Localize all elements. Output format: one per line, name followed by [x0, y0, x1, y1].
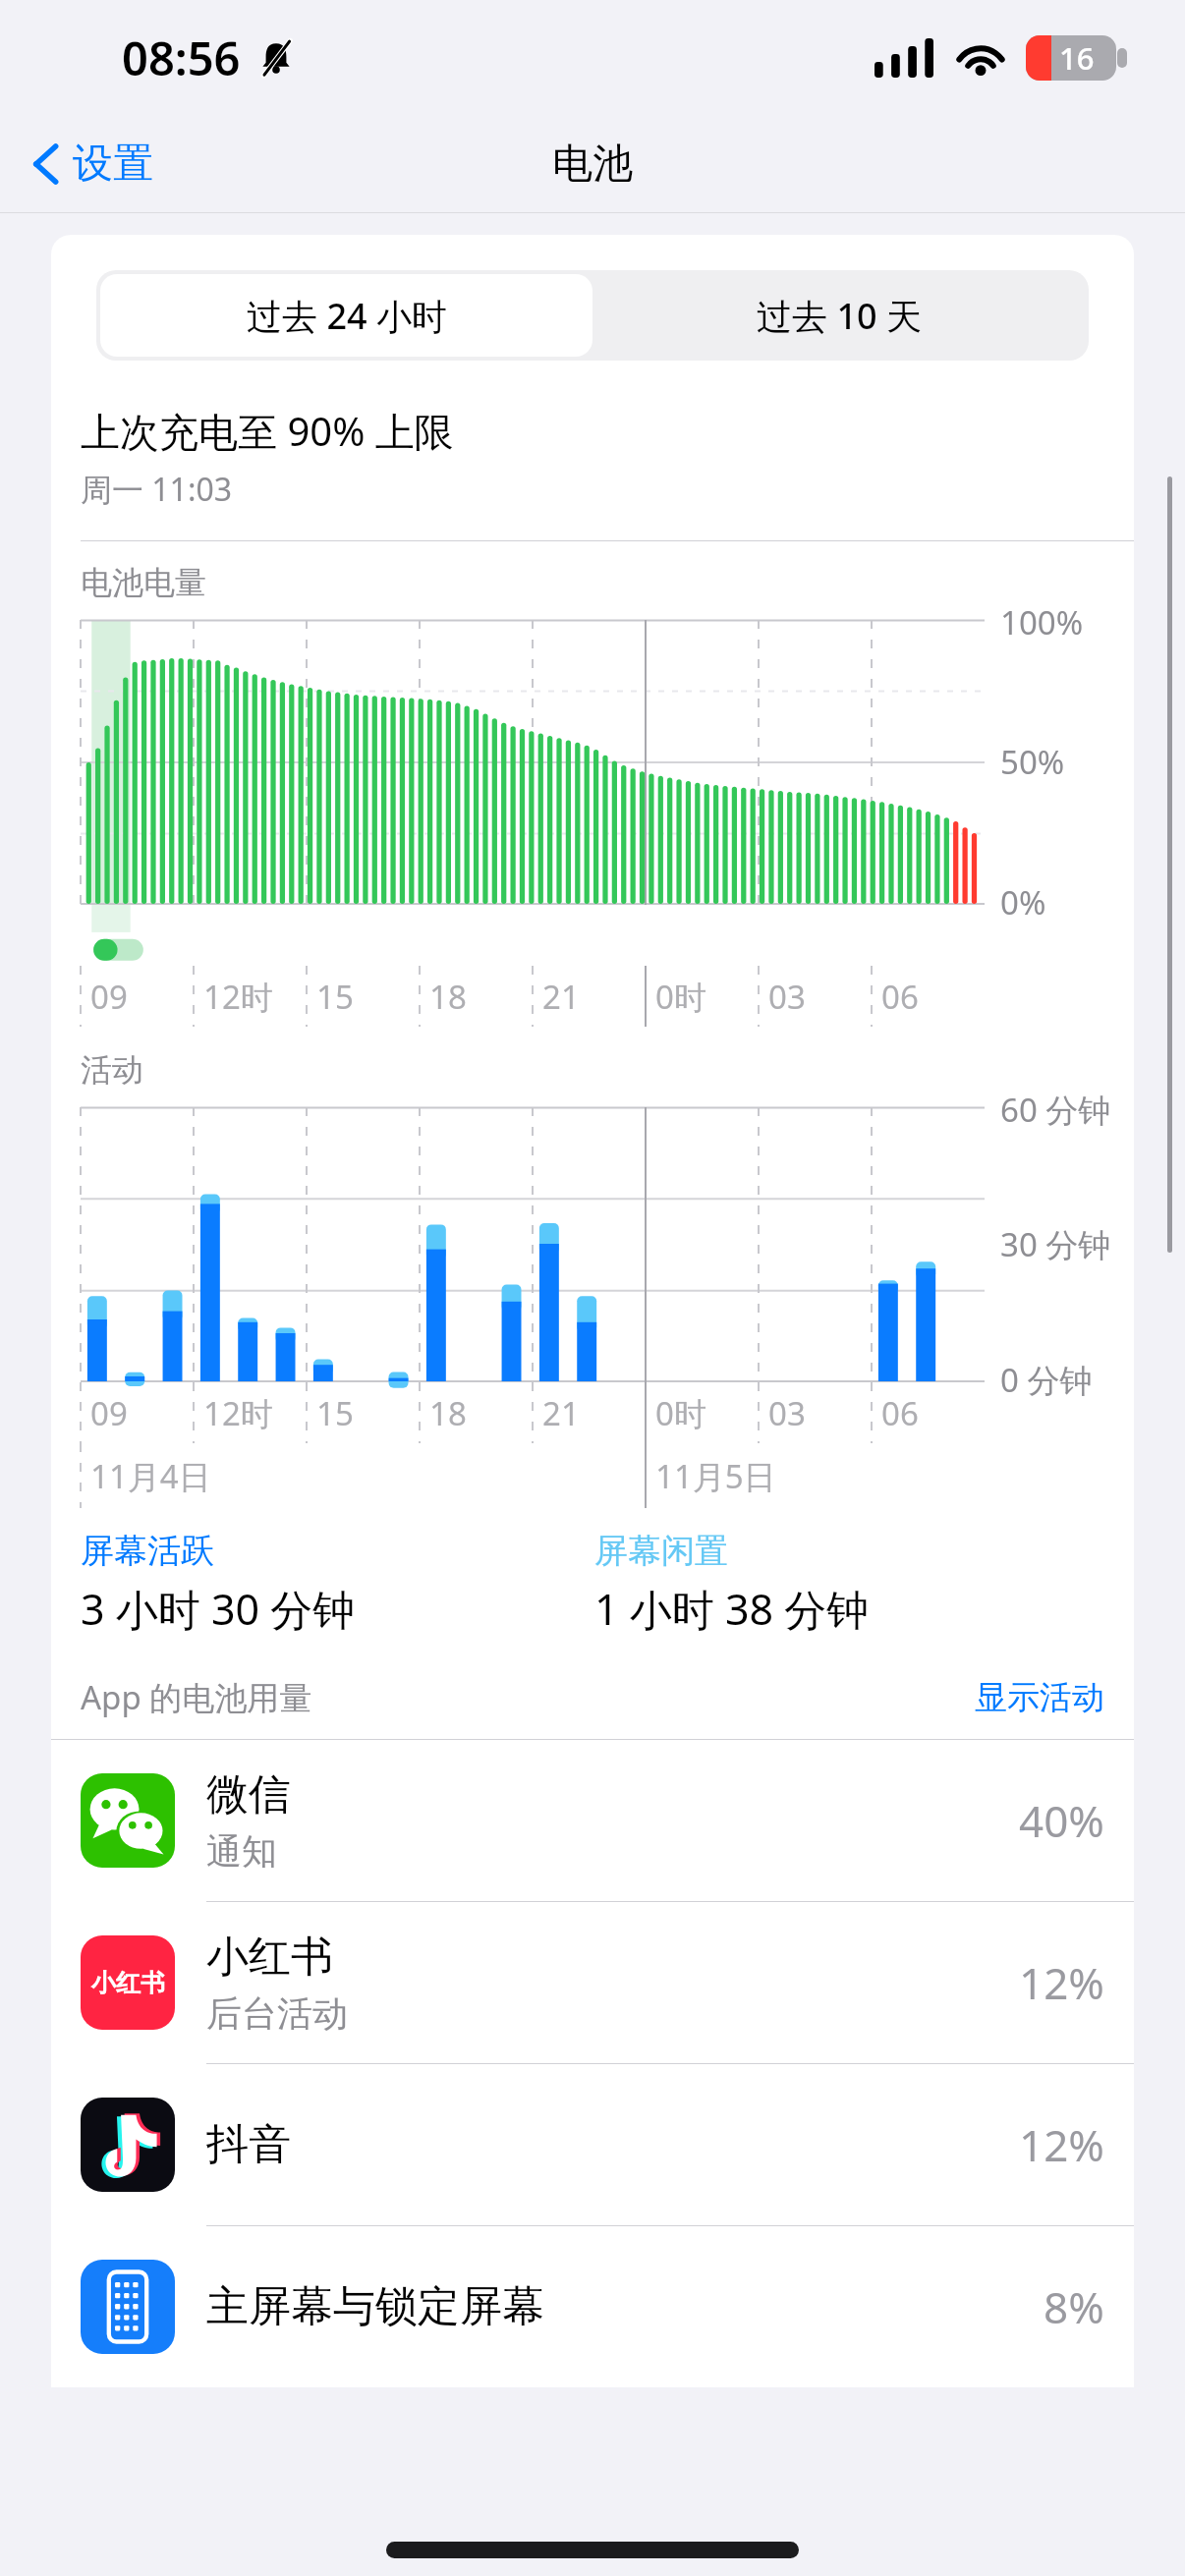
staticText: 11月5日 — [655, 1454, 776, 1498]
staticText: 8% — [1044, 2277, 1104, 2336]
staticText: 03 — [768, 975, 806, 1019]
button[interactable]: 过去 24 小时 — [100, 274, 592, 357]
staticText: 09 — [90, 975, 128, 1019]
staticText: 30 分钟 — [1000, 1222, 1111, 1266]
staticText: 小红书 — [206, 1931, 333, 1984]
staticText: 11月4日 — [90, 1454, 211, 1498]
staticText: 50% — [1000, 740, 1065, 784]
staticText: 21 — [542, 975, 580, 1019]
staticText: 上次充电至 90% 上限 — [81, 404, 454, 458]
staticText: 通知 — [206, 1829, 277, 1874]
button[interactable]: 抖音 — [51, 2064, 1134, 2226]
staticText: App 的电池用量 — [81, 1675, 312, 1719]
button[interactable]: 过去 10 天 — [592, 274, 1085, 357]
staticText: 微信 — [206, 1768, 291, 1821]
staticText: 1 小时 38 分钟 — [594, 1580, 870, 1638]
button[interactable]: 设置 — [24, 131, 161, 197]
staticText: 电池电量 — [81, 563, 206, 602]
button[interactable]: 屏幕活跃 — [81, 1530, 214, 1572]
staticText: 16 — [1059, 37, 1095, 79]
staticText: 60 分钟 — [1000, 1088, 1111, 1132]
staticText: 06 — [881, 1391, 919, 1435]
staticText: 15 — [316, 1391, 354, 1435]
staticText: 设置 — [73, 139, 153, 190]
staticText: 21 — [542, 1391, 580, 1435]
staticText: 06 — [881, 975, 919, 1019]
button[interactable]: 微信 — [51, 1740, 1134, 1902]
button[interactable]: 显示活动 — [975, 1677, 1104, 1718]
staticText: 后台活动 — [206, 1991, 348, 2036]
staticText: 抖音 — [206, 2118, 291, 2171]
staticText: 40% — [1019, 1791, 1104, 1850]
staticText: 15 — [316, 975, 354, 1019]
staticText: 100% — [1000, 600, 1084, 644]
staticText: 12时 — [203, 975, 273, 1019]
staticText: 0% — [1000, 880, 1046, 924]
staticText: 08:56 — [122, 27, 241, 89]
staticText: 过去 10 天 — [757, 292, 922, 340]
staticText: 18 — [429, 1391, 467, 1435]
button[interactable]: 屏幕闲置 — [594, 1530, 728, 1572]
staticText: 0时 — [655, 1391, 706, 1435]
staticText: 12% — [1019, 2115, 1104, 2174]
staticText: 12% — [1019, 1953, 1104, 2012]
staticText: 03 — [768, 1391, 806, 1435]
staticText: 周一 11:03 — [81, 468, 233, 511]
staticText: 过去 24 小时 — [247, 292, 447, 340]
staticText: 主屏幕与锁定屏幕 — [206, 2280, 544, 2333]
staticText: 活动 — [81, 1050, 143, 1090]
staticText: 12时 — [203, 1391, 273, 1435]
staticText: 小红书 — [91, 1968, 165, 1998]
button[interactable]: 小红书 — [51, 1902, 1134, 2064]
staticText: 0时 — [655, 975, 706, 1019]
staticText: 3 小时 30 分钟 — [81, 1580, 356, 1638]
staticText: 0 分钟 — [1000, 1358, 1093, 1402]
button[interactable]: 主屏幕与锁定屏幕 — [51, 2226, 1134, 2387]
staticText: 电池 — [552, 139, 633, 190]
staticText: 09 — [90, 1391, 128, 1435]
staticText: 18 — [429, 975, 467, 1019]
